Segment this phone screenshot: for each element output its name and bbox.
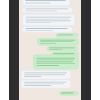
button[interactable]: Sent messages [19,30,81,70]
button[interactable]: Chat conversation [19,0,81,100]
